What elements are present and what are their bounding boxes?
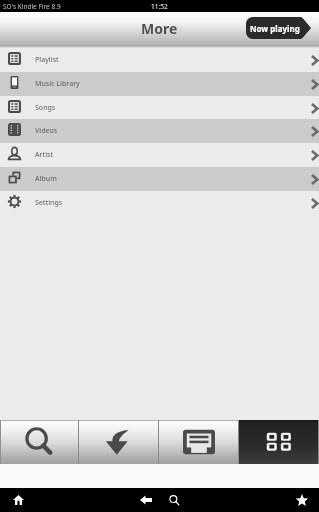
button[interactable]: Apps [239, 420, 319, 464]
button[interactable]: Docs [159, 420, 239, 464]
button[interactable]: Videos [0, 119, 319, 143]
staticText: Artist [35, 150, 54, 160]
button[interactable]: Album [0, 167, 319, 191]
staticText: Songs [35, 103, 56, 113]
button[interactable]: Artist [0, 143, 319, 167]
staticText: Now playing [250, 23, 300, 34]
staticText: Album [35, 174, 57, 184]
button[interactable]: Back [134, 488, 158, 512]
button[interactable]: Home [6, 488, 30, 512]
button[interactable]: Search [0, 420, 79, 464]
button[interactable]: Settings [0, 191, 319, 215]
button[interactable]: Music Library [0, 72, 319, 96]
staticText: 11:52 [151, 2, 168, 11]
staticText: More [141, 19, 178, 38]
button[interactable]: Favorites [290, 488, 314, 512]
staticText: Music Library [35, 79, 80, 89]
staticText: Settings [35, 198, 63, 208]
staticText: SO's Kindle Fire 8.9 [3, 2, 61, 11]
staticText: Playlist [35, 55, 59, 65]
button[interactable]: Downloads [79, 420, 159, 464]
button[interactable]: Playlist [0, 48, 319, 72]
staticText: Videos [35, 126, 58, 136]
button[interactable]: Songs [0, 96, 319, 120]
button[interactable]: Now playing [246, 17, 311, 39]
button[interactable]: Search [162, 488, 186, 512]
